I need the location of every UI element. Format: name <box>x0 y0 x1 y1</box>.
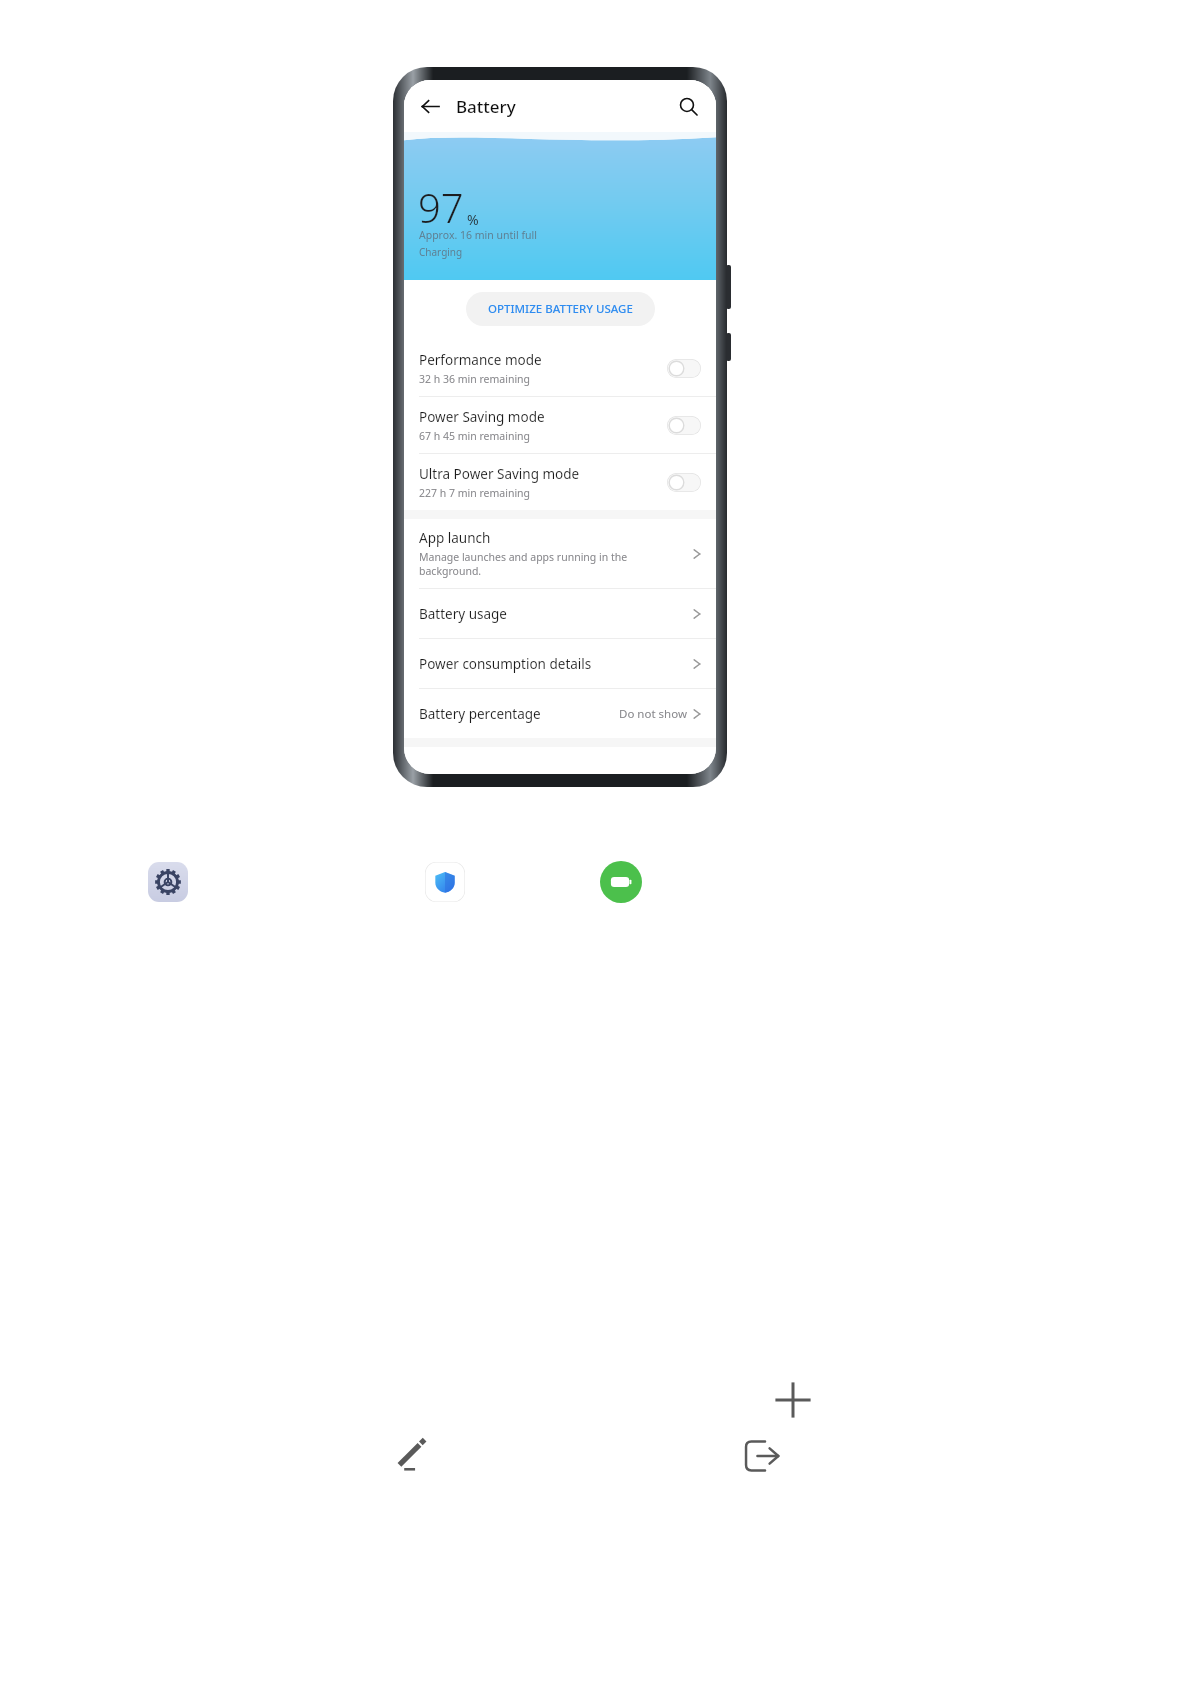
button[interactable]: Ultra Power Saving mode <box>404 454 716 510</box>
button[interactable]: Back <box>412 88 448 124</box>
button[interactable]: Security <box>425 862 465 902</box>
button[interactable]: OPTIMIZE BATTERY USAGE <box>466 292 655 326</box>
button[interactable]: Battery usage <box>404 589 716 638</box>
staticText: 97 <box>418 180 464 234</box>
staticText: Power consumption details <box>419 655 592 673</box>
staticText: Battery <box>456 95 516 118</box>
staticText: % <box>467 210 479 229</box>
staticText: Power Saving mode <box>419 408 545 426</box>
button[interactable]: Log out <box>734 1428 790 1484</box>
button[interactable]: Battery <box>600 861 642 903</box>
staticText: Manage launches and apps running in the … <box>419 550 628 578</box>
staticText: Approx. 16 min until full <box>419 228 537 242</box>
button[interactable]: Battery percentage <box>404 689 716 738</box>
button[interactable]: Edit <box>385 1428 437 1480</box>
button[interactable]: Toggle <box>667 416 701 435</box>
staticText: Do not show <box>619 706 687 722</box>
staticText: Battery usage <box>419 605 507 623</box>
button[interactable]: Power Saving mode <box>404 397 716 453</box>
staticText: Charging <box>419 245 463 259</box>
button[interactable]: Add <box>765 1372 821 1428</box>
staticText: 32 h 36 min remaining <box>419 372 531 386</box>
button[interactable]: Search <box>670 88 706 124</box>
button[interactable]: Performance mode <box>404 340 716 396</box>
staticText: 67 h 45 min remaining <box>419 429 531 443</box>
button[interactable]: Toggle <box>667 473 701 492</box>
staticText: Battery percentage <box>419 705 541 723</box>
button[interactable]: Power consumption details <box>404 639 716 688</box>
staticText: 227 h 7 min remaining <box>419 486 531 500</box>
staticText: Performance mode <box>419 351 542 369</box>
button[interactable]: Toggle <box>667 359 701 378</box>
staticText: Ultra Power Saving mode <box>419 465 580 483</box>
staticText: App launch <box>419 529 491 547</box>
button[interactable]: Settings <box>148 862 188 902</box>
button[interactable]: App launch <box>404 519 716 588</box>
staticText: OPTIMIZE BATTERY USAGE <box>488 301 633 317</box>
